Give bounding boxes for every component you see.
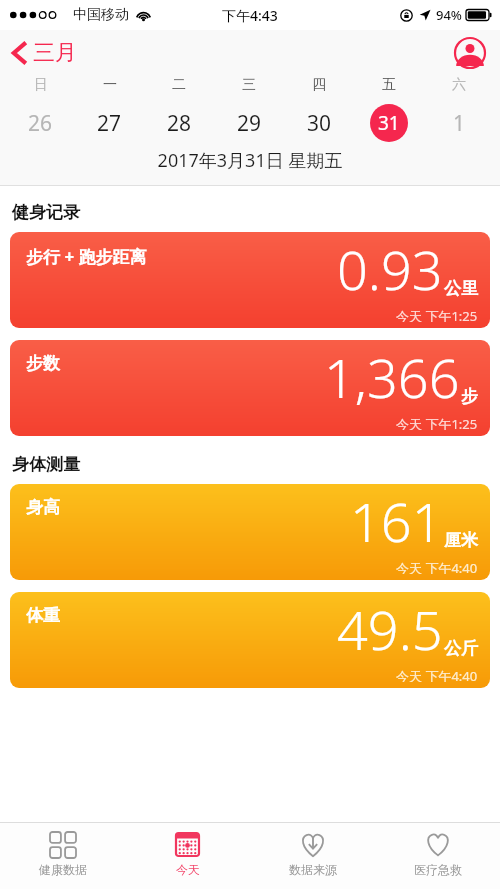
- staticText: 今天: [176, 862, 200, 877]
- staticText: 数据来源: [289, 862, 337, 877]
- staticText: 2017年3月31日 星期五: [0, 148, 500, 173]
- staticText: 161: [350, 484, 443, 558]
- staticText: 29: [237, 109, 262, 138]
- button[interactable]: 今天: [125, 823, 250, 889]
- staticText: 公里: [444, 278, 478, 299]
- staticText: 今天 下午1:25: [396, 307, 478, 322]
- button[interactable]: 26: [6, 104, 75, 142]
- button[interactable]: 步数: [10, 340, 490, 436]
- staticText: 健康数据: [39, 862, 87, 877]
- button[interactable]: 30: [284, 104, 354, 142]
- button[interactable]: 个人资料: [454, 37, 486, 69]
- staticText: 身高: [26, 497, 60, 518]
- button[interactable]: 数据来源: [250, 823, 375, 889]
- staticText: 今天 下午4:40: [396, 559, 478, 574]
- staticText: 二: [172, 76, 186, 94]
- staticText: 步: [461, 386, 478, 407]
- staticText: 中国移动: [73, 6, 129, 24]
- staticText: 26: [28, 109, 53, 138]
- staticText: 下午4:43: [222, 6, 278, 25]
- staticText: 1: [453, 109, 466, 138]
- staticText: 一: [103, 76, 117, 94]
- button[interactable]: 体重: [10, 592, 490, 688]
- button[interactable]: 27: [75, 104, 144, 142]
- staticText: 体重: [26, 605, 60, 626]
- staticText: 28: [167, 109, 192, 138]
- staticText: 94%: [436, 6, 462, 24]
- staticText: 四: [312, 76, 326, 94]
- button[interactable]: 三月: [0, 35, 89, 71]
- staticText: 27: [97, 109, 122, 138]
- button[interactable]: 身高: [10, 484, 490, 580]
- staticText: 今天 下午1:25: [396, 415, 478, 430]
- staticText: 今天 下午4:40: [396, 667, 478, 682]
- staticText: 日: [34, 76, 48, 94]
- staticText: 三: [242, 76, 256, 94]
- button[interactable]: 医疗急救: [375, 823, 500, 889]
- staticText: 健身记录: [12, 202, 80, 223]
- staticText: 49.5: [337, 592, 443, 666]
- staticText: 步数: [26, 353, 60, 374]
- staticText: 三月: [33, 39, 77, 67]
- staticText: 医疗急救: [414, 862, 462, 877]
- button[interactable]: 1: [424, 104, 494, 142]
- staticText: 步行 + 跑步距离: [26, 245, 147, 268]
- button[interactable]: 31: [354, 104, 424, 142]
- staticText: 公斤: [444, 638, 478, 659]
- staticText: 30: [307, 109, 332, 138]
- staticText: 五: [382, 76, 396, 94]
- button[interactable]: 29: [214, 104, 284, 142]
- staticText: 厘米: [444, 530, 478, 551]
- staticText: 0.93: [337, 232, 443, 306]
- staticText: 六: [452, 76, 466, 94]
- button[interactable]: 健康数据: [0, 823, 125, 889]
- button[interactable]: 28: [144, 104, 214, 142]
- button[interactable]: 步行 + 跑步距离: [10, 232, 490, 328]
- staticText: 31: [378, 110, 400, 136]
- staticText: 身体测量: [12, 454, 80, 475]
- staticText: 1,366: [324, 340, 460, 414]
